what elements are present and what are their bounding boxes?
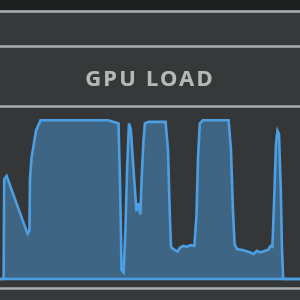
staticText: GPU LOAD <box>85 62 215 92</box>
button[interactable]: GPU LOAD <box>0 48 300 105</box>
button[interactable]: GPU load history graph <box>0 108 300 287</box>
